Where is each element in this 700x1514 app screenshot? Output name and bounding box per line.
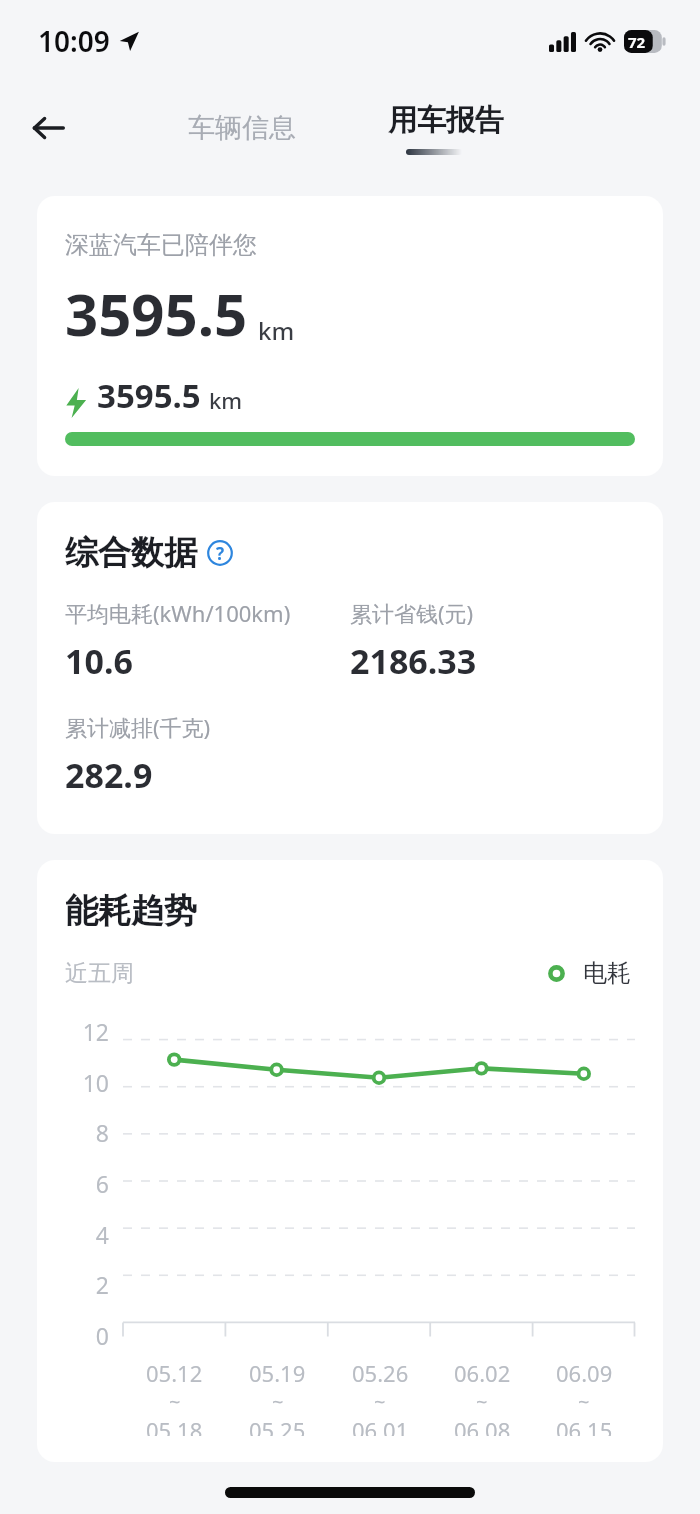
staticText: ~ bbox=[476, 1388, 488, 1415]
staticText: 2 bbox=[95, 1269, 109, 1295]
staticText: 06.01 bbox=[352, 1415, 409, 1436]
button[interactable]: 电耗 bbox=[544, 954, 635, 992]
staticText: 平均电耗(kWh/100km) bbox=[65, 598, 291, 628]
staticText: 282.9 bbox=[65, 752, 153, 798]
staticText: 累计省钱(元) bbox=[350, 598, 474, 628]
staticText: 用车报告 bbox=[388, 102, 504, 139]
staticText: 8 bbox=[95, 1117, 109, 1143]
staticText: 电耗 bbox=[583, 958, 631, 988]
staticText: 05.25 bbox=[249, 1415, 306, 1436]
staticText: 05.26 bbox=[352, 1358, 409, 1388]
staticText: ~ bbox=[272, 1388, 284, 1415]
staticText: 深蓝汽车已陪伴您 bbox=[65, 230, 257, 260]
staticText: 05.12 bbox=[146, 1358, 203, 1388]
staticText: 05.18 bbox=[146, 1415, 203, 1436]
staticText: ~ bbox=[374, 1388, 386, 1415]
button[interactable]: 车辆信息 bbox=[178, 103, 306, 153]
staticText: 05.19 bbox=[249, 1358, 306, 1388]
staticText: 06.15 bbox=[556, 1415, 613, 1436]
staticText: 3595.5 bbox=[65, 274, 248, 353]
button[interactable]: Back bbox=[20, 100, 76, 156]
staticText: 06.02 bbox=[454, 1358, 511, 1388]
staticText: 4 bbox=[95, 1219, 109, 1245]
button[interactable]: 综合数据 bbox=[37, 502, 663, 834]
staticText: 10.6 bbox=[65, 638, 133, 684]
staticText: 2186.33 bbox=[350, 638, 477, 684]
staticText: 车辆信息 bbox=[188, 111, 296, 145]
staticText: 累计减排(千克) bbox=[65, 712, 211, 742]
staticText: 综合数据 bbox=[65, 532, 197, 574]
staticText: 72 bbox=[628, 32, 646, 52]
staticText: km bbox=[209, 385, 243, 415]
staticText: km bbox=[258, 314, 295, 347]
staticText: ~ bbox=[169, 1388, 181, 1415]
staticText: 12 bbox=[82, 1016, 109, 1042]
staticText: 3595.5 bbox=[97, 373, 201, 418]
button[interactable]: 能耗趋势 bbox=[37, 860, 663, 1462]
button[interactable]: Info bbox=[207, 540, 233, 566]
staticText: 6 bbox=[95, 1168, 109, 1194]
button[interactable]: 用车报告 bbox=[378, 102, 514, 155]
staticText: 10:09 bbox=[38, 22, 110, 60]
staticText: 0 bbox=[95, 1320, 109, 1346]
staticText: 近五周 bbox=[65, 959, 134, 988]
staticText: 06.09 bbox=[556, 1358, 613, 1388]
button[interactable]: 深蓝汽车已陪伴您 bbox=[37, 196, 663, 476]
staticText: 能耗趋势 bbox=[65, 890, 197, 932]
staticText: ~ bbox=[578, 1388, 590, 1415]
staticText: 10 bbox=[82, 1067, 109, 1093]
staticText: ? bbox=[216, 542, 225, 565]
staticText: 06.08 bbox=[454, 1415, 511, 1436]
